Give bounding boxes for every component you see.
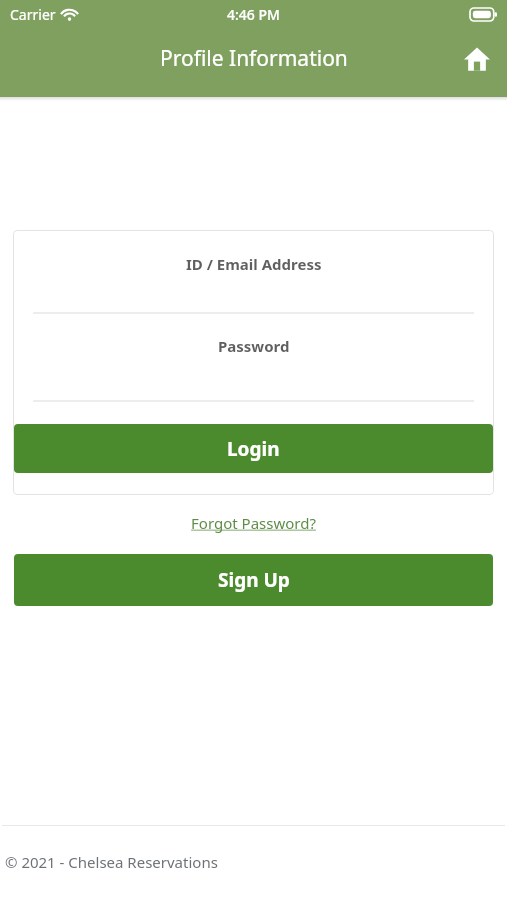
button[interactable]: Login xyxy=(14,424,493,473)
staticText: 4:46 PM xyxy=(227,5,280,24)
staticText: Login xyxy=(227,436,280,462)
button[interactable]: Forgot Password? xyxy=(183,509,324,537)
staticText: Profile Information xyxy=(160,44,348,73)
staticText: Forgot Password? xyxy=(191,513,316,533)
staticText: Carrier xyxy=(10,5,56,24)
staticText: Sign Up xyxy=(218,567,290,593)
button[interactable]: Password xyxy=(13,314,494,400)
staticText: Password xyxy=(218,336,290,356)
staticText: © 2021 - Chelsea Reservations xyxy=(5,852,218,872)
button[interactable]: Sign Up xyxy=(14,554,493,606)
button[interactable]: Home xyxy=(455,37,499,81)
button[interactable]: ID / Email Address xyxy=(13,230,494,312)
staticText: ID / Email Address xyxy=(186,254,322,274)
